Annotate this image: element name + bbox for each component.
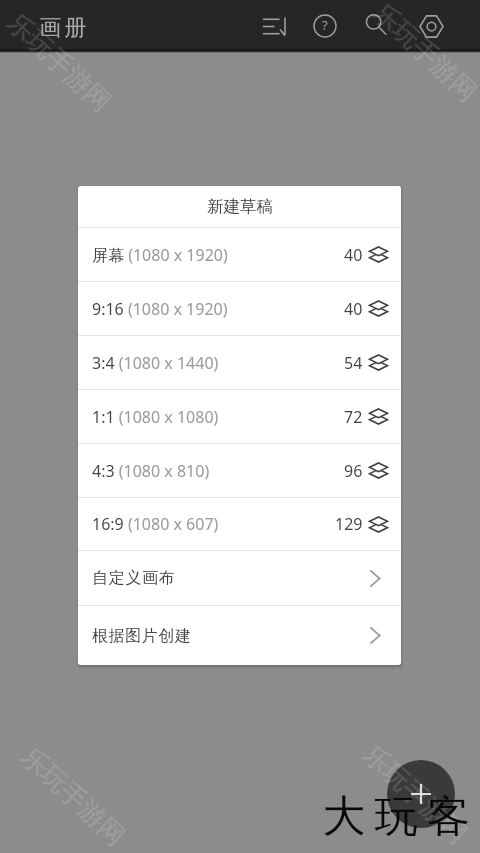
staticText: 1:1 (1080 x 1080) [92,406,219,428]
staticText: 根据图片创建 [92,626,192,646]
staticText: 新建草稿 [207,196,273,217]
staticText: 自定义画布 [92,568,175,588]
button[interactable]: 9:16 (1080 x 1920) [78,282,401,335]
staticText: 3:4 (1080 x 1440) [92,352,219,374]
staticText: 乐玩手游网 [366,0,480,109]
staticText: 乐玩手游网 [356,738,474,851]
staticText: 129 [335,513,363,535]
staticText: 96 [344,460,363,482]
button[interactable]: 1:1 (1080 x 1080) [78,390,401,443]
staticText: 乐玩手游网 [14,740,132,853]
button[interactable]: Sort [253,4,297,48]
staticText: 40 [344,298,363,320]
button[interactable]: 4:3 (1080 x 810) [78,444,401,497]
button[interactable]: 16:9 (1080 x 607) [78,498,401,550]
staticText: 4:3 (1080 x 810) [92,460,210,482]
staticText: 40 [344,244,363,266]
staticText: 72 [344,406,363,428]
button[interactable]: New drawing [387,760,455,828]
button[interactable]: Search [355,4,399,48]
button[interactable]: 自定义画布 [78,551,401,605]
staticText: 画册 [38,14,88,42]
staticText: 屏幕 (1080 x 1920) [92,244,228,266]
button[interactable]: Settings [409,4,453,48]
button[interactable]: 根据图片创建 [78,606,401,665]
button[interactable]: 3:4 (1080 x 1440) [78,336,401,389]
button[interactable]: Help [303,4,347,48]
staticText: 16:9 (1080 x 607) [92,513,219,535]
staticText: 乐玩手游网 [0,6,118,119]
button[interactable]: 屏幕 (1080 x 1920) [78,228,401,281]
staticText: 大玩客 [318,790,474,844]
staticText: 9:16 (1080 x 1920) [92,298,228,320]
staticText: 54 [344,352,363,374]
staticText: ? [322,16,328,34]
